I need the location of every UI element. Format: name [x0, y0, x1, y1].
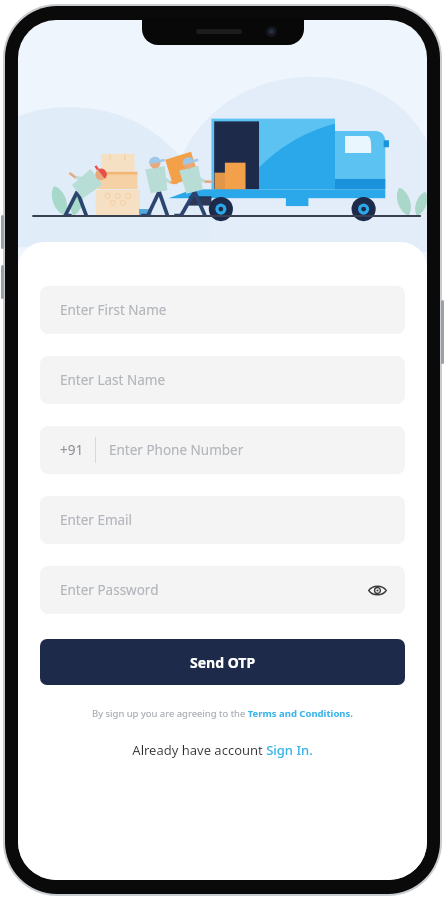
button[interactable]: By sign up you are agreeing to the Terms… — [40, 707, 405, 720]
staticText: Already have account Sign In. — [132, 741, 313, 759]
button[interactable]: Enter Last Name — [40, 356, 405, 404]
staticText: +91 — [60, 441, 84, 459]
staticText: Enter Password — [60, 581, 159, 599]
staticText: Send OTP — [190, 653, 256, 672]
button[interactable]: Show password — [363, 576, 391, 604]
staticText: Enter Email — [60, 511, 133, 529]
button[interactable]: Enter Password — [40, 566, 405, 614]
button[interactable]: Already have account Sign In. — [40, 741, 405, 759]
button[interactable]: +91 — [40, 426, 405, 474]
staticText: Enter Last Name — [60, 371, 165, 389]
staticText: Enter Phone Number — [109, 441, 244, 459]
button[interactable]: Send OTP — [40, 639, 405, 685]
button[interactable]: Enter Email — [40, 496, 405, 544]
staticText: By sign up you are agreeing to the Terms… — [92, 707, 353, 720]
button[interactable]: Enter First Name — [40, 286, 405, 334]
staticText: Enter First Name — [60, 301, 167, 319]
